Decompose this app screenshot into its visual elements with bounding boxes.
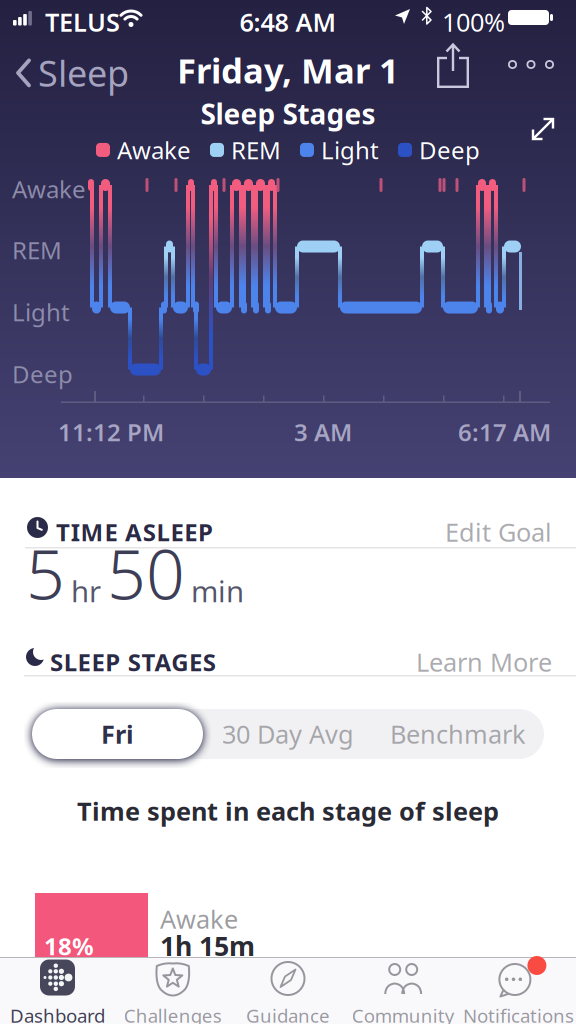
button[interactable]: Edit Goal [402,515,552,549]
staticText: Fri [101,717,134,751]
staticText: Sleep [38,49,129,97]
staticText: 5 [26,528,65,618]
button[interactable]: More options [508,60,554,69]
button[interactable]: Share [437,43,469,88]
staticText: 11:12 PM [58,416,164,448]
staticText: Awake [117,134,191,166]
button[interactable]: Guidance [230,957,346,1024]
staticText: Deep [12,358,73,390]
staticText: Sleep Stages [200,95,375,132]
staticText: Light [321,134,379,166]
staticText: hr [71,571,101,610]
button[interactable]: Benchmark [373,709,543,759]
button[interactable]: 30 Day Avg [203,709,373,759]
staticText: Friday, Mar 1 [177,47,399,93]
staticText: min [191,571,244,610]
staticText: Awake [12,173,86,205]
button[interactable]: Challenges [115,957,230,1024]
staticText: Guidance [246,1003,330,1024]
button[interactable]: Dashboard [0,957,115,1024]
staticText: REM [12,234,62,266]
button[interactable]: Learn More [402,645,552,679]
staticText: Edit Goal [445,515,552,549]
button[interactable]: Back [16,49,129,97]
staticText: 3 AM [294,416,352,448]
staticText: REM [231,134,281,166]
staticText: Light [12,296,70,328]
staticText: 100% [442,5,505,39]
staticText: TELUS [45,5,120,39]
staticText: 6:48 AM [239,5,336,39]
staticText: 50 [107,528,185,618]
staticText: Challenges [124,1003,222,1024]
staticText: TIME ASLEEP [56,516,213,548]
button[interactable]: Fri [32,709,203,759]
staticText: 30 Day Avg [222,717,354,751]
staticText: Notifications [463,1003,574,1024]
staticText: Learn More [416,645,552,679]
staticText: 18% [44,930,94,962]
staticText: Community [352,1003,455,1024]
button[interactable]: Community [346,957,461,1024]
staticText: Deep [419,134,480,166]
staticText: Benchmark [390,717,526,751]
staticText: 1h 15m [160,928,255,963]
staticText: 6:17 AM [458,416,551,448]
staticText: Awake [160,902,238,936]
staticText: Time spent in each stage of sleep [77,794,499,828]
button[interactable]: Notifications [461,957,576,1024]
button[interactable]: Expand chart [529,115,557,143]
staticText: Dashboard [10,1003,105,1024]
staticText: SLEEP STAGES [50,646,216,678]
